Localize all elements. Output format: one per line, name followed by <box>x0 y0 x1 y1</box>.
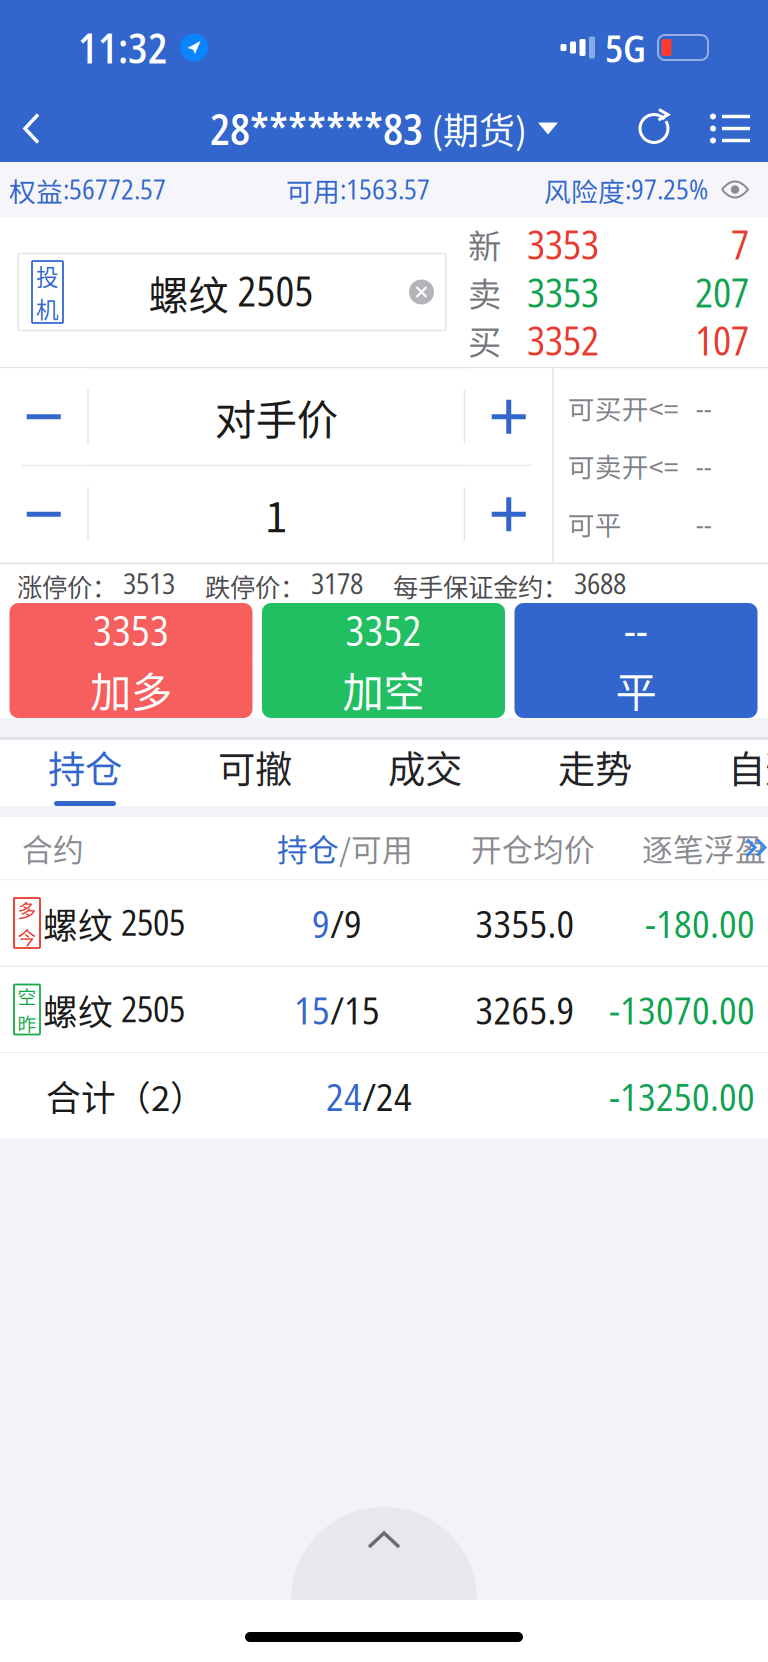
staticText: 买 <box>468 316 501 364</box>
staticText: 207 <box>695 265 749 319</box>
button[interactable]: 多 <box>0 880 768 965</box>
staticText: 走势 <box>558 740 632 794</box>
button[interactable]: 空 <box>0 967 768 1052</box>
staticText: 可卖开<= <box>568 446 679 485</box>
button[interactable]: Increase <box>465 369 552 465</box>
button[interactable]: Menu <box>692 95 768 162</box>
staticText: 逐笔浮盈 <box>642 826 766 870</box>
button[interactable]: 持仓 <box>0 740 170 806</box>
staticText: 可平 <box>568 504 622 543</box>
staticText: 机 <box>36 292 59 325</box>
staticText: 加多 <box>90 659 172 719</box>
staticText: 空 <box>17 982 36 1009</box>
staticText: -- <box>696 388 712 426</box>
staticText: 15 <box>294 983 330 1036</box>
staticText: 对手价 <box>215 387 338 447</box>
staticText: /24 <box>362 1070 412 1122</box>
button[interactable]: 可撤 <box>170 740 340 806</box>
staticText: 11:32 <box>78 19 168 76</box>
staticText: 可买开<= <box>568 388 679 427</box>
staticText: 3352 <box>345 602 421 658</box>
staticText: 加空 <box>342 659 424 719</box>
staticText: 螺纹 2505 <box>43 984 185 1035</box>
staticText: 3355.0 <box>475 897 574 949</box>
staticText: -- <box>624 602 648 658</box>
button[interactable]: 28*******83 <box>210 95 558 162</box>
button[interactable]: 投 <box>18 253 446 330</box>
staticText: -13070.00 <box>609 983 755 1036</box>
staticText: 7 <box>731 217 749 271</box>
staticText: 成交 <box>388 740 462 794</box>
staticText: 24 <box>326 1070 362 1122</box>
staticText: 螺纹 2505 <box>148 263 313 321</box>
staticText: 今 <box>17 923 36 950</box>
button[interactable]: Increase <box>465 466 552 562</box>
staticText: -- <box>696 446 712 484</box>
staticText: 风险度:97.25% <box>544 170 708 209</box>
button[interactable]: Toggle balance visibility <box>718 172 752 206</box>
staticText: 合约 <box>22 826 84 870</box>
staticText: 涨停价： 3513 <box>17 563 175 604</box>
button[interactable]: Decrease <box>0 466 87 562</box>
button[interactable]: 3352 <box>262 603 505 718</box>
button[interactable]: 自选 <box>680 740 768 806</box>
staticText: 平 <box>615 659 656 719</box>
staticText: 可撤 <box>218 740 292 794</box>
staticText: (期货) <box>431 102 527 154</box>
staticText: 107 <box>695 313 749 367</box>
staticText: 持仓 <box>277 826 339 870</box>
button[interactable]: 3353 <box>9 603 252 718</box>
staticText: 3352 <box>527 313 599 367</box>
staticText: 投 <box>36 259 59 292</box>
staticText: -13250.00 <box>609 1070 755 1122</box>
button[interactable]: 成交 <box>340 740 510 806</box>
staticText: -- <box>696 504 712 542</box>
staticText: 1 <box>265 484 288 544</box>
staticText: /可用 <box>339 826 413 870</box>
staticText: 3353 <box>527 265 599 319</box>
staticText: /9 <box>330 897 362 949</box>
staticText: 28*******83 <box>210 99 423 157</box>
button[interactable]: Expand panel <box>291 1507 477 1600</box>
staticText: 3353 <box>527 217 599 271</box>
staticText: 昨 <box>17 1009 36 1036</box>
staticText: 卖 <box>468 268 501 316</box>
staticText: 新 <box>468 220 501 268</box>
staticText: /15 <box>330 983 380 1036</box>
staticText: -180.00 <box>645 897 755 949</box>
staticText: 3265.9 <box>475 983 574 1036</box>
button[interactable]: -- <box>514 603 757 718</box>
staticText: 跌停价： 3178 <box>205 563 363 604</box>
button[interactable]: Decrease <box>0 369 87 465</box>
staticText: 自选 <box>728 740 768 794</box>
staticText: 多 <box>17 896 36 923</box>
staticText: 开仓均价 <box>471 826 595 870</box>
button[interactable]: 走势 <box>510 740 680 806</box>
staticText: 每手保证金约： 3688 <box>393 563 626 604</box>
staticText: 权益:56772.57 <box>9 170 166 209</box>
staticText: 9 <box>312 897 330 949</box>
staticText: 合计（2） <box>46 1071 205 1120</box>
button[interactable]: Refresh <box>618 95 692 162</box>
staticText: 3353 <box>93 602 169 658</box>
staticText: 可用:1563.57 <box>286 170 430 209</box>
button[interactable]: Back <box>0 95 64 162</box>
staticText: 持仓 <box>48 740 122 794</box>
staticText: 螺纹 2505 <box>43 898 185 948</box>
staticText: 5G <box>605 21 646 74</box>
